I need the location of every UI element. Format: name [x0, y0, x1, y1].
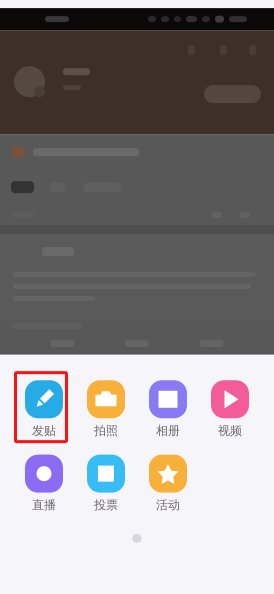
button[interactable]: 拍照 [75, 380, 137, 438]
button[interactable]: 发贴 [13, 380, 75, 438]
staticText: 投票 [94, 498, 118, 512]
button[interactable]: 投票 [75, 455, 137, 512]
button[interactable]: 相册 [137, 380, 199, 438]
staticText: 拍照 [94, 423, 118, 438]
staticText: 活动 [156, 498, 180, 512]
staticText: 直播 [32, 498, 56, 512]
staticText: 发贴 [32, 423, 56, 438]
button[interactable]: 活动 [137, 455, 199, 512]
staticText: 相册 [156, 423, 180, 438]
button[interactable]: Close [119, 520, 155, 556]
staticText: 视频 [218, 423, 242, 438]
button[interactable]: 视频 [199, 380, 261, 438]
button[interactable]: 直播 [13, 455, 75, 512]
